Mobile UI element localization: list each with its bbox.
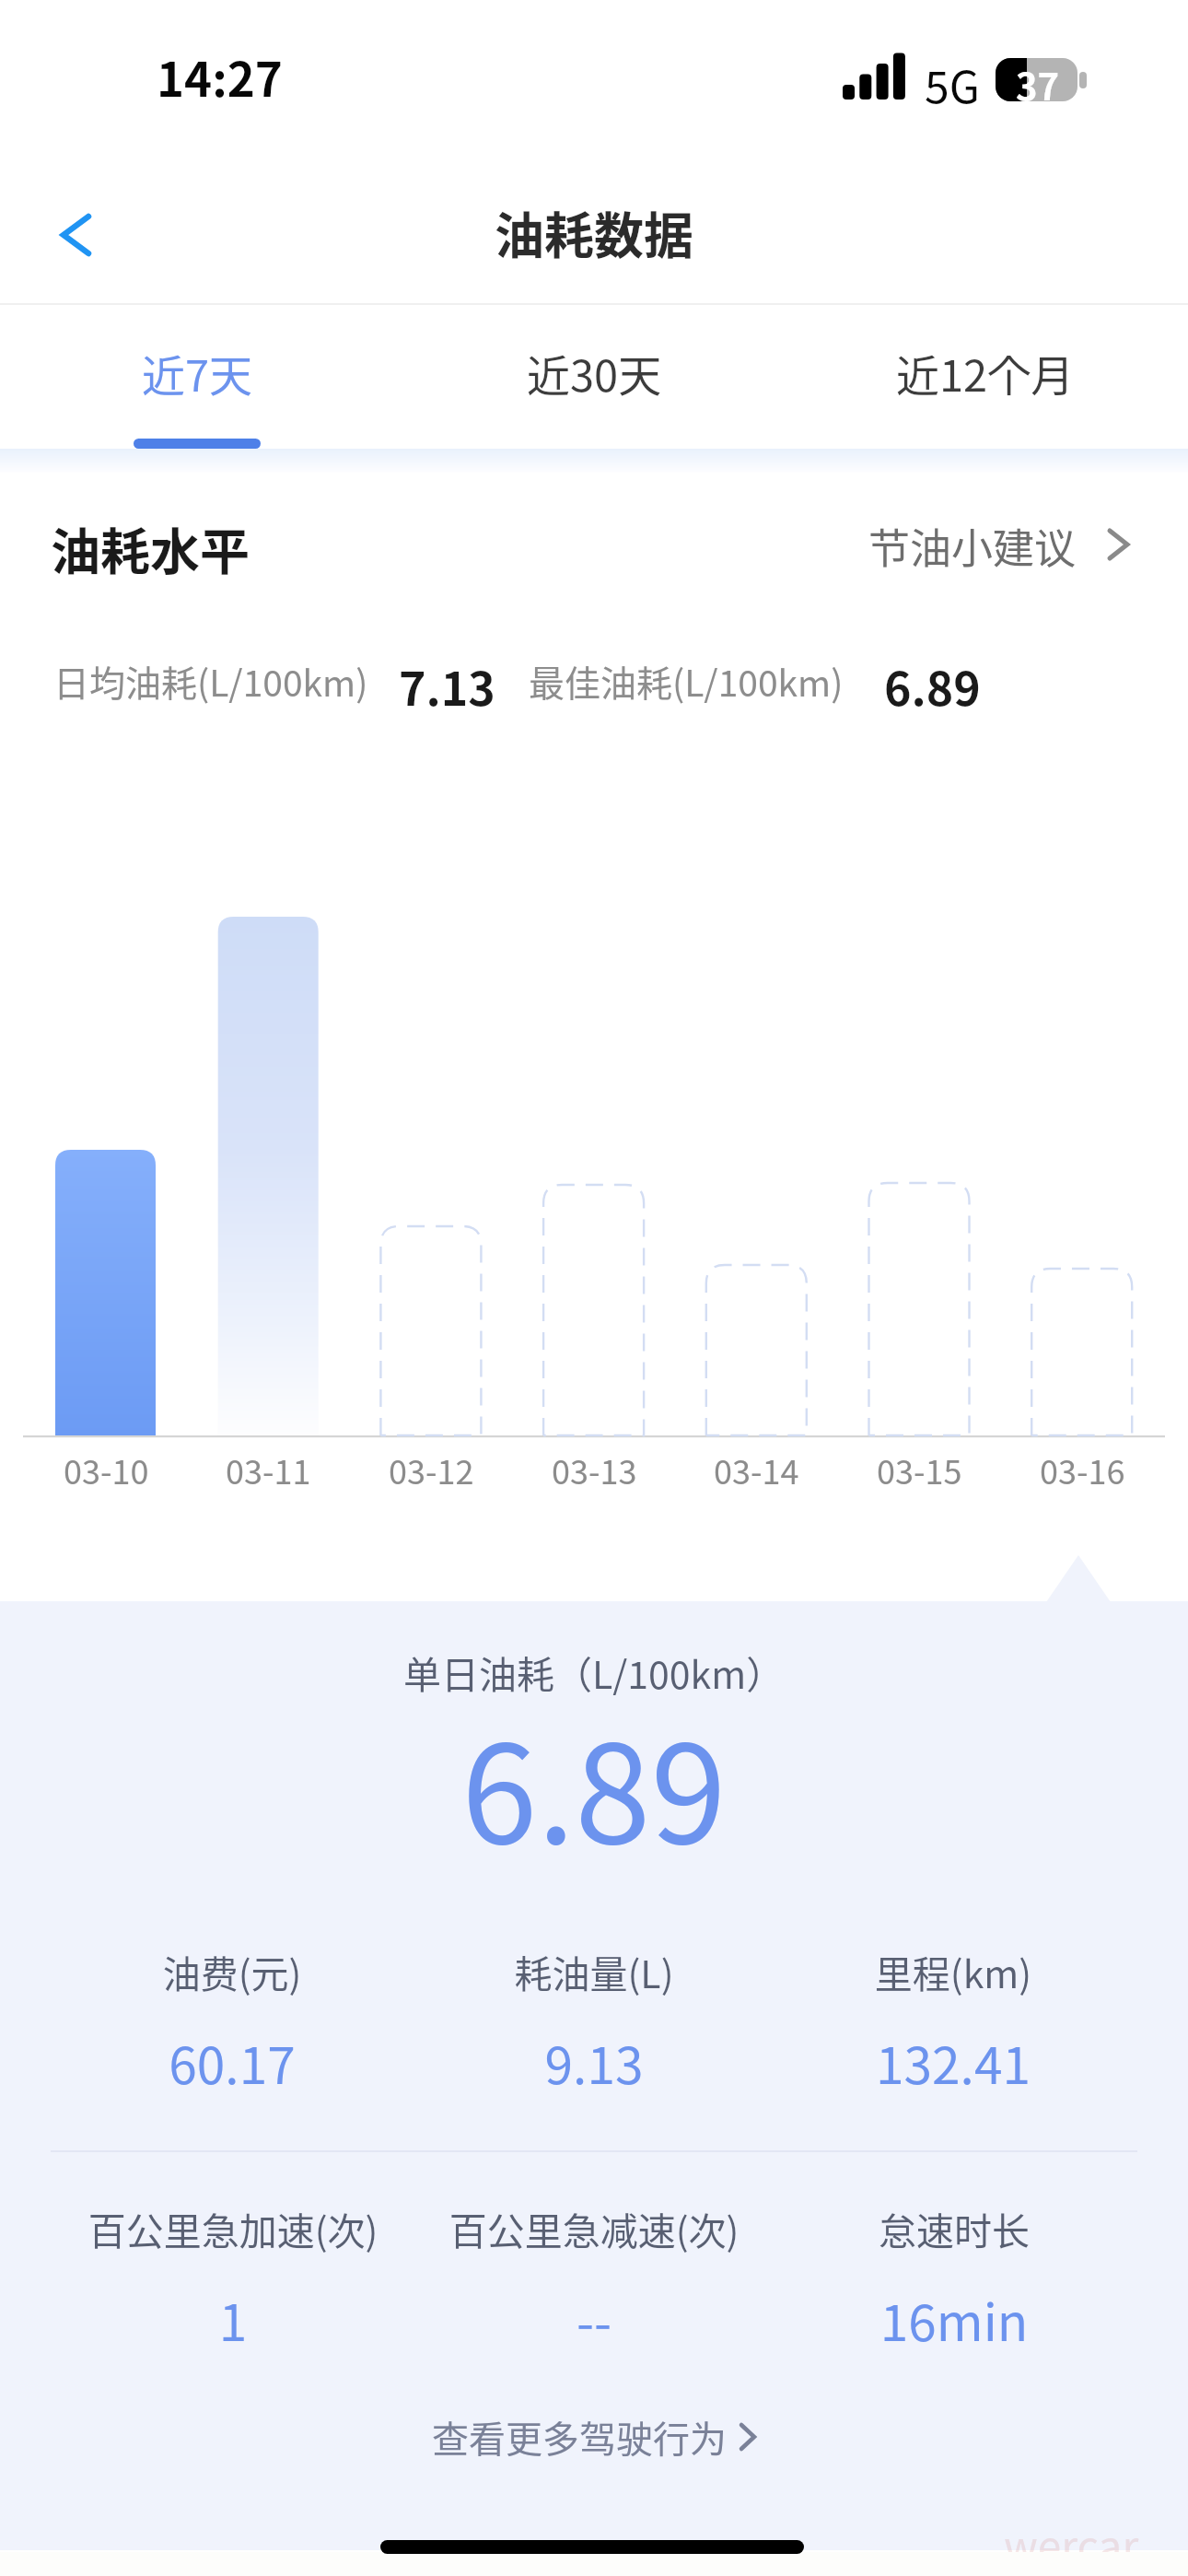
staticText: 03-12	[389, 1446, 474, 1493]
staticText: 03-11	[226, 1446, 311, 1493]
staticText: 03-13	[552, 1446, 637, 1493]
staticText: 油耗数据	[495, 196, 693, 268]
staticText: 03-15	[877, 1446, 962, 1493]
staticText: --	[382, 2282, 806, 2356]
staticText: 03-16	[1040, 1446, 1125, 1493]
staticText: 怠速时长	[742, 2201, 1166, 2255]
button[interactable]: 近12个月	[792, 310, 1188, 462]
staticText: 03-14	[714, 1446, 799, 1493]
button[interactable]: 近30天	[396, 310, 792, 462]
staticText: 最佳油耗(L/100km)	[529, 655, 844, 707]
staticText: 16min	[742, 2282, 1166, 2356]
staticText: 节油小建议	[868, 516, 1077, 573]
staticText: 60.17	[20, 2025, 444, 2099]
button[interactable]: 查看更多驾驶行为	[432, 2410, 756, 2464]
button[interactable]: Back	[28, 187, 123, 283]
staticText: 37	[1016, 58, 1060, 101]
staticText: 油耗水平	[51, 512, 250, 584]
staticText: 近7天	[142, 341, 253, 404]
staticText: 6.89	[884, 652, 981, 709]
staticText: 6.89	[461, 1685, 727, 1882]
staticText: 1	[21, 2282, 445, 2356]
staticText: 耗油量(L)	[382, 1944, 806, 1998]
staticText: 单日油耗（L/100km）	[403, 1645, 785, 1699]
staticText: 里程(km)	[741, 1944, 1165, 1998]
staticText: 03-10	[64, 1446, 149, 1493]
staticText: 7.13	[399, 652, 495, 709]
button[interactable]: 节油小建议	[868, 516, 1129, 573]
staticText: 日均油耗(L/100km)	[53, 655, 368, 707]
staticText: wercar	[1004, 2513, 1139, 2575]
button[interactable]: 近7天	[0, 310, 396, 462]
staticText: 132.41	[741, 2025, 1165, 2099]
staticText: 5G	[925, 52, 980, 116]
staticText: 百公里急加速(次)	[21, 2201, 445, 2255]
staticText: 9.13	[382, 2025, 806, 2099]
staticText: 查看更多驾驶行为	[432, 2410, 727, 2464]
staticText: 14:27	[157, 42, 283, 111]
staticText: 油费(元)	[20, 1944, 444, 1998]
staticText: 近30天	[527, 341, 662, 404]
staticText: 百公里急减速(次)	[382, 2201, 806, 2255]
staticText: 近12个月	[896, 341, 1075, 404]
